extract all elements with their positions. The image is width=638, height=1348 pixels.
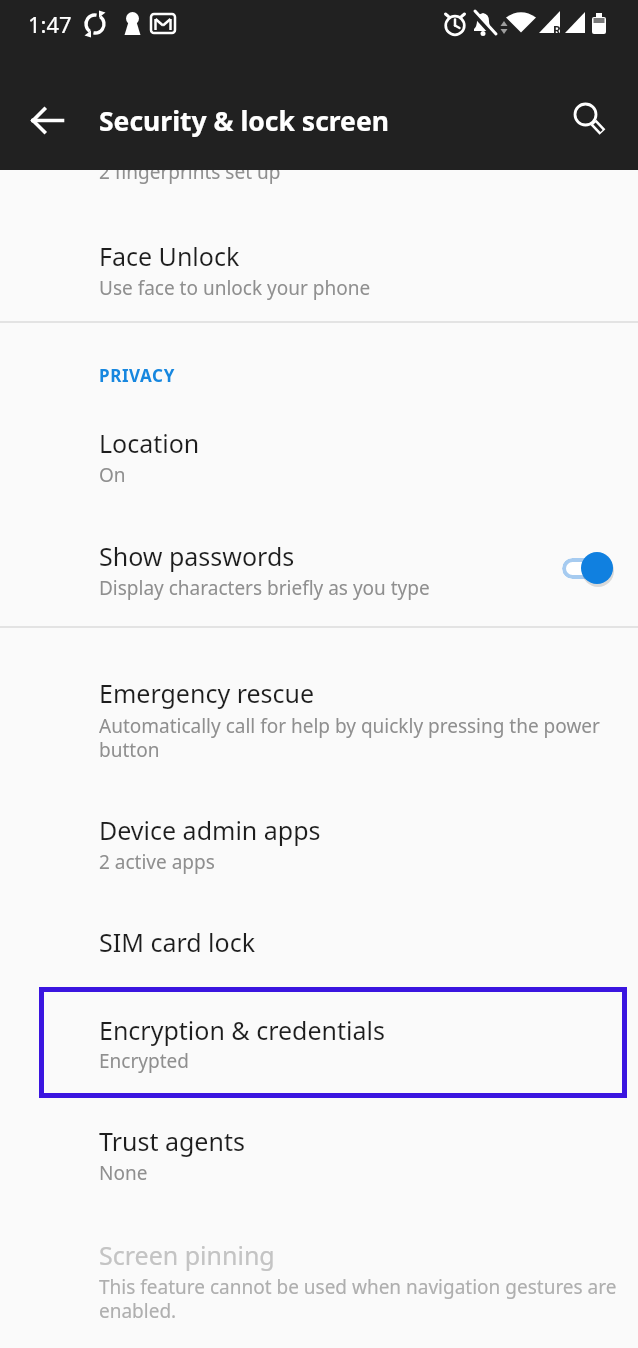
- staticText: Use face to unlock your phone: [99, 275, 371, 301]
- staticText: Encryption & credentials: [99, 1013, 385, 1047]
- staticText: Show passwords: [99, 539, 295, 573]
- staticText: Security & lock screen: [99, 103, 389, 139]
- staticText: Trust agents: [99, 1124, 245, 1158]
- staticText: 2 active apps: [99, 849, 215, 875]
- staticText: On: [99, 462, 126, 488]
- button[interactable]: [0, 900, 638, 985]
- button[interactable]: [39, 987, 627, 1098]
- staticText: Encrypted: [99, 1048, 189, 1074]
- button[interactable]: [0, 1098, 638, 1210]
- staticText: Device admin apps: [99, 813, 321, 847]
- staticText: PRIVACY: [99, 364, 175, 387]
- button[interactable]: [0, 650, 638, 790]
- staticText: None: [99, 1160, 148, 1186]
- button[interactable]: [565, 93, 620, 148]
- button[interactable]: [20, 94, 74, 148]
- button[interactable]: [0, 512, 638, 626]
- staticText: Location: [99, 426, 200, 460]
- button[interactable]: [0, 790, 638, 900]
- button[interactable]: [0, 400, 638, 512]
- staticText: Automatically call for help by quickly p…: [99, 713, 600, 762]
- staticText: R: [553, 22, 561, 35]
- staticText: 1:47: [28, 9, 72, 39]
- staticText: This feature cannot be used when navigat…: [99, 1274, 617, 1323]
- button[interactable]: [0, 212, 638, 321]
- button[interactable]: [562, 558, 613, 579]
- staticText: Face Unlock: [99, 239, 240, 273]
- staticText: SIM card lock: [99, 925, 256, 959]
- staticText: Screen pinning: [99, 1238, 275, 1272]
- staticText: Display characters briefly as you type: [99, 575, 430, 601]
- staticText: Emergency rescue: [99, 676, 315, 710]
- button[interactable]: [0, 1210, 638, 1340]
- staticText: 2 fingerprints set up: [99, 159, 281, 185]
